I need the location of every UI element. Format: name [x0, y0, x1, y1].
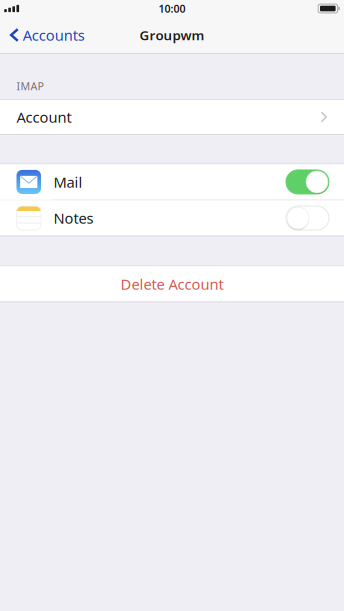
button[interactable]: Mail [286, 170, 329, 194]
button[interactable]: Notes [286, 206, 329, 230]
staticText: IMAP [16, 79, 43, 93]
staticText: Delete Account [120, 274, 223, 294]
staticText: Mail [54, 172, 83, 192]
staticText: Accounts [23, 25, 85, 45]
button[interactable]: Delete Account [0, 266, 344, 302]
button[interactable]: Account [0, 100, 344, 134]
staticText: Account [16, 107, 71, 127]
staticText: Groupwm [139, 26, 204, 44]
staticText: Notes [54, 208, 94, 228]
staticText: 10:00 [158, 1, 185, 16]
button[interactable]: Accounts [0, 20, 85, 50]
